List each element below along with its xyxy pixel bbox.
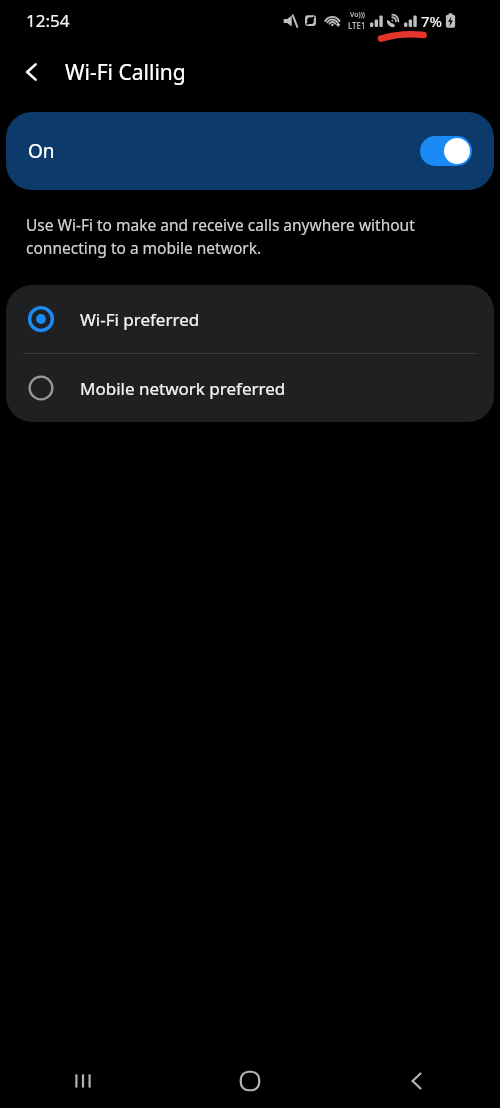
staticText: 12:54: [26, 9, 70, 32]
button[interactable]: Wi-Fi Calling toggle: [420, 136, 472, 166]
staticText: Vo))): [350, 10, 365, 20]
button[interactable]: Mobile network preferred: [6, 354, 494, 422]
button[interactable]: Home: [166, 1054, 333, 1108]
staticText: Use Wi-Fi to make and receive calls anyw…: [26, 214, 472, 259]
staticText: Wi-Fi Calling: [65, 58, 186, 87]
staticText: On: [28, 138, 55, 164]
staticText: Wi-Fi preferred: [80, 308, 200, 331]
button[interactable]: Back: [333, 1054, 500, 1108]
button[interactable]: On: [6, 112, 494, 190]
button[interactable]: Back: [10, 50, 54, 94]
staticText: 7%: [421, 11, 443, 31]
staticText: LTE1: [348, 20, 366, 31]
staticText: Mobile network preferred: [80, 377, 286, 400]
button[interactable]: Recents: [0, 1054, 166, 1108]
button[interactable]: Wi-Fi preferred: [6, 285, 494, 353]
